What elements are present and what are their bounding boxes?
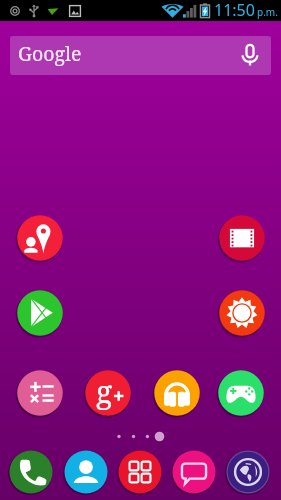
staticText: p.m. <box>257 5 278 19</box>
button[interactable]: Contacts <box>62 448 110 496</box>
button[interactable]: Games <box>216 368 266 418</box>
button[interactable]: Calculator <box>15 368 65 418</box>
button[interactable]: All apps <box>116 448 164 496</box>
button[interactable]: Messaging <box>170 448 218 496</box>
button[interactable]: Local <box>15 213 65 263</box>
button[interactable]: Music <box>152 368 202 418</box>
button[interactable]: Movies <box>217 213 267 263</box>
staticText: g <box>96 371 113 412</box>
button[interactable]: Settings <box>217 288 267 338</box>
button[interactable]: Google <box>10 36 271 75</box>
staticText: Google <box>18 40 82 67</box>
button[interactable]: Phone <box>7 448 55 496</box>
staticText: 11:50 <box>214 0 255 20</box>
button[interactable]: Browser <box>224 448 272 496</box>
button[interactable]: Google Plus <box>83 368 133 418</box>
button[interactable]: Play Store <box>15 288 65 338</box>
